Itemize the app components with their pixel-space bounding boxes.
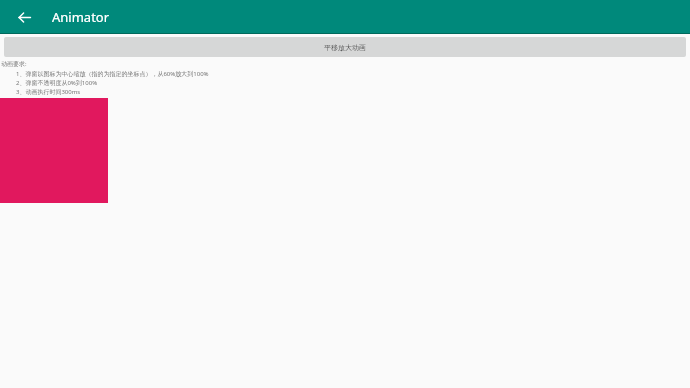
staticText: Animator	[52, 8, 110, 26]
button[interactable]: Back	[10, 3, 38, 31]
staticText: 1、弹窗以图标为中心缩放（指的为指定的坐标点），从60%放大到100%	[16, 70, 209, 78]
staticText: 平移放大动画	[324, 43, 366, 52]
staticText: 2、弹窗不透明度从0%到100%	[16, 79, 98, 87]
staticText: 动画要求:	[1, 60, 27, 68]
staticText: 3、动画执行时间300ms	[16, 88, 81, 96]
button[interactable]: 平移放大动画	[4, 37, 686, 57]
